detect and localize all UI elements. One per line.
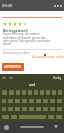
button[interactable]: [15, 99, 20, 103]
button[interactable]: [57, 99, 62, 103]
button[interactable]: [15, 107, 20, 111]
button[interactable]: [29, 107, 34, 111]
staticText: Super Wirkung, der andere aufheben ich b…: [3, 32, 52, 46]
button[interactable]: [28, 90, 32, 95]
button[interactable]: [43, 99, 48, 103]
button[interactable]: [36, 99, 41, 103]
button[interactable]: [8, 99, 13, 103]
button[interactable]: [22, 107, 27, 111]
button[interactable]: [22, 90, 26, 95]
button[interactable]: [16, 90, 20, 95]
staticText: Bin begeistert!: [3, 28, 28, 33]
button[interactable]: [56, 115, 62, 119]
button[interactable]: [2, 115, 9, 119]
button[interactable]: ANTWORTEN: [2, 63, 24, 71]
button[interactable]: [58, 90, 62, 95]
button[interactable]: Home: [4, 125, 9, 130]
button[interactable]: Previous field: [2, 76, 6, 80]
button[interactable]: [8, 107, 13, 111]
button[interactable]: [50, 99, 55, 103]
button[interactable]: Back: [54, 125, 58, 129]
staticText: 09:40: [2, 3, 13, 8]
button[interactable]: [34, 90, 38, 95]
staticText: ANTWORTEN: [4, 65, 22, 69]
staticText: Bewertung melden: [3, 51, 30, 55]
button[interactable]: [52, 90, 56, 95]
button[interactable]: [2, 107, 6, 111]
button[interactable]: [40, 90, 44, 95]
button[interactable]: [57, 107, 62, 111]
staticText: Als unangemessen melden: [32, 55, 64, 59]
button[interactable]: [9, 90, 14, 95]
button[interactable]: [11, 115, 17, 119]
button[interactable]: [36, 107, 41, 111]
button[interactable]: Recent apps: [20, 126, 44, 128]
button[interactable]: [46, 90, 50, 95]
button[interactable]: Next field: [9, 76, 13, 80]
button[interactable]: [48, 115, 54, 119]
button[interactable]: [2, 90, 7, 95]
button[interactable]: Als unangemessen melden: [32, 55, 64, 59]
button[interactable]: [22, 99, 27, 103]
button[interactable]: [2, 99, 6, 103]
staticText: Fertig: [53, 76, 62, 80]
button[interactable]: [43, 107, 48, 111]
button[interactable]: [50, 107, 55, 111]
button[interactable]: [29, 99, 34, 103]
staticText: und: [29, 83, 35, 87]
